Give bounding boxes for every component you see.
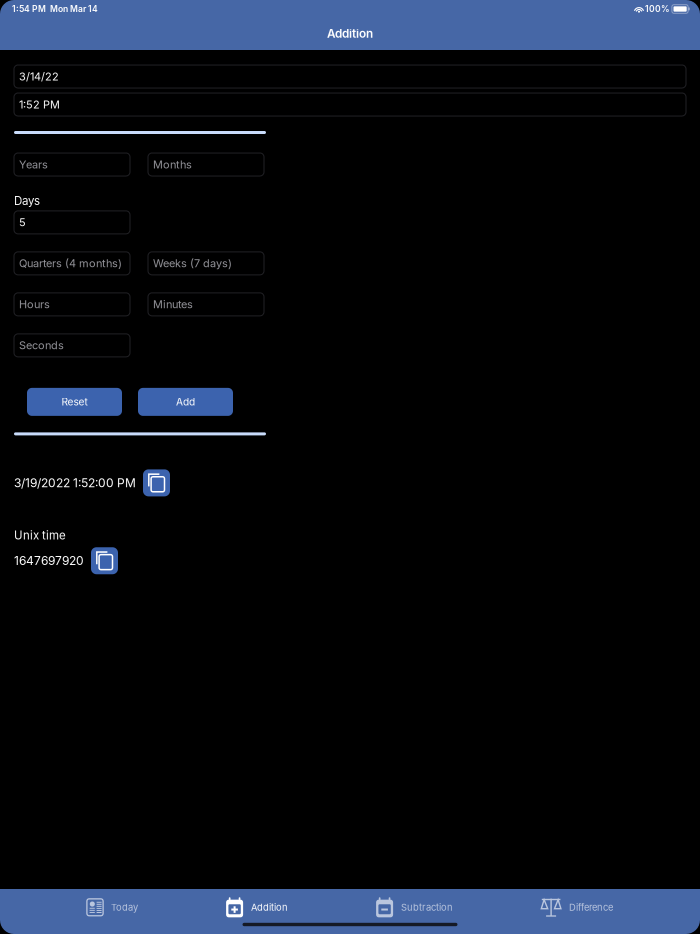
staticText: Months	[153, 158, 192, 171]
button[interactable]: Reset	[27, 388, 122, 416]
button[interactable]: Difference	[541, 890, 613, 924]
staticText: Quarters (4 months)	[19, 257, 122, 270]
staticText: Weeks (7 days)	[153, 257, 232, 270]
button[interactable]: Add	[138, 388, 233, 416]
staticText: 1:54 PM Mon Mar 14	[12, 4, 98, 14]
staticText: Minutes	[153, 298, 193, 311]
button[interactable]: 5	[14, 211, 130, 234]
staticText: 1:52 PM	[19, 98, 60, 111]
staticText: 3/14/22	[19, 70, 59, 83]
staticText: Today	[111, 902, 138, 913]
button[interactable]: Months	[148, 153, 264, 176]
button[interactable]: Hours	[14, 293, 130, 316]
button[interactable]: Seconds	[14, 334, 130, 357]
staticText: Addition	[251, 902, 288, 913]
button[interactable]: Addition	[226, 890, 288, 924]
staticText: Seconds	[19, 339, 64, 352]
staticText: Hours	[19, 298, 50, 311]
button[interactable]: Years	[14, 153, 130, 176]
staticText: 100%	[645, 4, 670, 14]
staticText: Difference	[569, 902, 613, 913]
button[interactable]: Minutes	[148, 293, 264, 316]
staticText: Addition	[327, 26, 373, 40]
staticText: Subtraction	[401, 902, 453, 913]
button[interactable]: Copy	[91, 547, 118, 574]
staticText: Days	[14, 194, 40, 208]
button[interactable]: Copy	[143, 469, 170, 496]
staticText: Unix time	[14, 528, 66, 542]
button[interactable]: Weeks (7 days)	[148, 252, 264, 275]
button[interactable]: Subtraction	[376, 890, 453, 924]
staticText: Add	[176, 396, 195, 408]
button[interactable]: 3/14/22	[14, 65, 686, 88]
staticText: Reset	[61, 396, 87, 408]
staticText: Years	[19, 158, 48, 171]
staticText: 3/19/2022 1:52:00 PM	[14, 476, 136, 490]
button[interactable]: 1:52 PM	[14, 93, 686, 116]
button[interactable]: Quarters (4 months)	[14, 252, 130, 275]
button[interactable]: Today	[87, 890, 138, 924]
staticText: 1647697920	[14, 553, 84, 568]
staticText: 5	[19, 216, 26, 229]
